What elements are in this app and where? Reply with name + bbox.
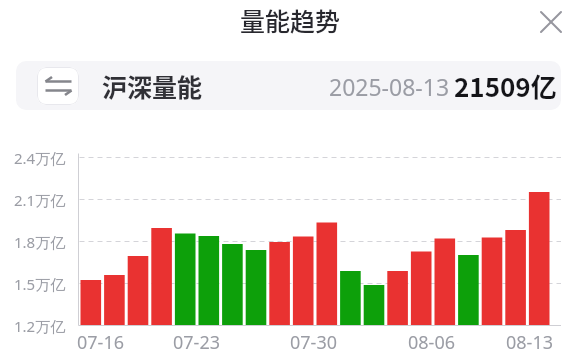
staticText: 量能趋势	[240, 2, 341, 38]
staticText: 21509亿	[454, 67, 557, 105]
staticText: 07-16	[77, 330, 124, 355]
staticText: 08-13	[506, 330, 553, 355]
button[interactable]	[535, 6, 567, 38]
staticText: 1.2万亿	[14, 316, 66, 336]
staticText: 1.5万亿	[14, 274, 66, 294]
staticText: 2.1万亿	[14, 190, 66, 210]
staticText: 沪深量能	[102, 68, 203, 104]
staticText: 2.4万亿	[14, 148, 66, 168]
staticText: 07-23	[173, 330, 220, 355]
button[interactable]: 沪深量能	[16, 61, 561, 110]
staticText: 2025-08-13	[329, 71, 450, 102]
staticText: 1.8万亿	[14, 232, 66, 252]
staticText: 07-30	[290, 330, 337, 355]
staticText: 08-06	[408, 330, 455, 355]
